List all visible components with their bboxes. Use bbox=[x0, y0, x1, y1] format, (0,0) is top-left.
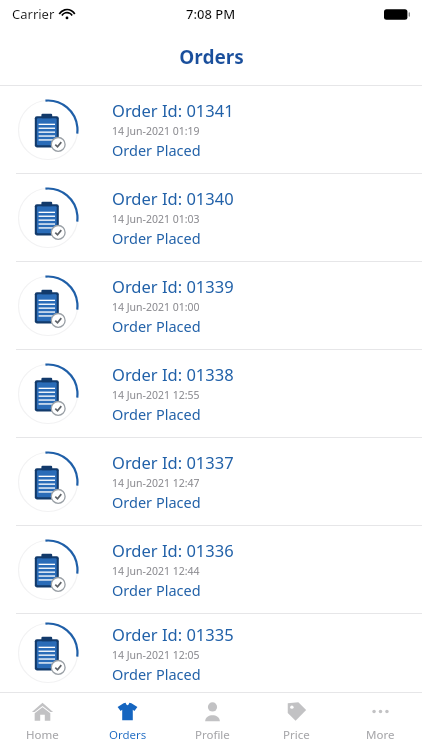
staticText: 14 Jun-2021 01:00 bbox=[112, 300, 200, 314]
staticText: 14 Jun-2021 01:03 bbox=[112, 212, 200, 226]
button[interactable]: Order Id: 01335 bbox=[0, 614, 422, 692]
button[interactable]: Order Id: 01339 bbox=[0, 262, 422, 349]
staticText: Order Id: 01341 bbox=[112, 99, 234, 121]
staticText: Order Placed bbox=[112, 580, 201, 600]
staticText: Order Id: 01338 bbox=[112, 363, 234, 385]
button[interactable]: Order Id: 01341 bbox=[0, 86, 422, 173]
staticText: Order Placed bbox=[112, 492, 201, 512]
staticText: 14 Jun-2021 12:05 bbox=[112, 648, 200, 662]
staticText: Order Id: 01337 bbox=[112, 451, 234, 473]
button[interactable]: Order Id: 01340 bbox=[0, 174, 422, 261]
staticText: Home bbox=[26, 727, 59, 743]
button[interactable]: Price bbox=[254, 693, 338, 750]
button[interactable]: Orders bbox=[85, 693, 170, 750]
staticText: Order Placed bbox=[112, 316, 201, 336]
button[interactable]: Profile bbox=[170, 693, 254, 750]
button[interactable]: Home bbox=[0, 693, 85, 750]
staticText: Order Id: 01336 bbox=[112, 539, 234, 561]
staticText: More bbox=[366, 727, 395, 743]
staticText: Order Id: 01339 bbox=[112, 275, 234, 297]
staticText: Order Placed bbox=[112, 140, 201, 160]
staticText: 7:08 PM bbox=[186, 5, 236, 23]
staticText: Order Placed bbox=[112, 664, 201, 684]
button[interactable]: Order Id: 01337 bbox=[0, 438, 422, 525]
staticText: Orders bbox=[109, 727, 147, 743]
staticText: Order Placed bbox=[112, 228, 201, 248]
staticText: Order Id: 01340 bbox=[112, 187, 234, 209]
staticText: 14 Jun-2021 01:19 bbox=[112, 124, 200, 138]
button[interactable]: Order Id: 01338 bbox=[0, 350, 422, 437]
staticText: 14 Jun-2021 12:55 bbox=[112, 388, 200, 402]
staticText: Profile bbox=[195, 727, 230, 743]
staticText: Price bbox=[283, 727, 310, 743]
staticText: Orders bbox=[179, 44, 244, 70]
button[interactable]: Order Id: 01336 bbox=[0, 526, 422, 613]
staticText: 14 Jun-2021 12:47 bbox=[112, 476, 200, 490]
button[interactable]: More bbox=[338, 693, 422, 750]
staticText: 14 Jun-2021 12:44 bbox=[112, 564, 200, 578]
staticText: Order Id: 01335 bbox=[112, 623, 234, 645]
staticText: Carrier bbox=[12, 5, 55, 23]
staticText: Order Placed bbox=[112, 404, 201, 424]
